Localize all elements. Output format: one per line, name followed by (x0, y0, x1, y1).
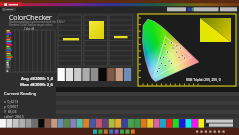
staticText: Avg dE2000: 1,4 (21, 76, 53, 82)
staticText: cd/m² 284,5 (4, 114, 24, 119)
staticText: Current Reading (4, 91, 37, 97)
staticText: Color dE (24, 27, 35, 31)
staticText: Y 83,03 (4, 109, 17, 114)
staticText: RGB Triplet: 255, 255, 0 (186, 78, 221, 82)
staticText: x 0,4213 (4, 99, 19, 104)
staticText: ColorChecker (9, 13, 52, 23)
staticText: Pantone ColorChecker target colors. (9, 23, 54, 27)
staticText: Shadow analysis is performed with the X-… (9, 20, 65, 24)
staticText: Max dE2000: 2,6 (20, 82, 53, 88)
staticText: y 0,5007 (4, 104, 19, 109)
